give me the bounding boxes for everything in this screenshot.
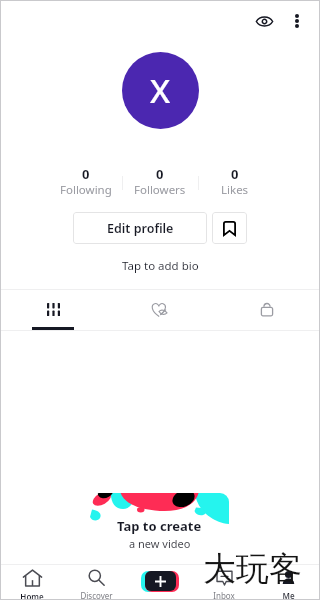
staticText: Home xyxy=(20,591,44,600)
staticText: Likes xyxy=(221,182,249,198)
button[interactable]: Videos xyxy=(0,290,106,330)
button[interactable]: 0 xyxy=(48,165,123,199)
staticText: 0 xyxy=(231,165,239,183)
button[interactable]: 0 xyxy=(123,165,197,199)
button[interactable]: Edit profile xyxy=(73,212,207,244)
staticText: a new video xyxy=(129,536,191,549)
staticText: Discover xyxy=(80,590,113,600)
button[interactable]: Me xyxy=(256,565,320,600)
staticText: Tap to add bio xyxy=(122,258,199,274)
staticText: Followers xyxy=(134,182,186,198)
staticText: Me xyxy=(282,590,295,600)
button[interactable]: Tap to create xyxy=(90,493,229,549)
button[interactable]: Views xyxy=(247,4,281,38)
staticText: 大玩客 xyxy=(203,548,302,590)
staticText: Edit profile xyxy=(107,220,174,237)
button[interactable]: Liked xyxy=(106,290,213,330)
staticText: Following xyxy=(60,182,112,198)
staticText: 0 xyxy=(82,165,90,183)
staticText: Inbox xyxy=(213,590,235,600)
button[interactable]: Private xyxy=(213,290,320,330)
button[interactable]: Create xyxy=(141,570,179,592)
button[interactable]: More options xyxy=(280,4,314,38)
button[interactable]: X xyxy=(122,52,199,129)
staticText: Tap to create xyxy=(117,517,202,535)
staticText: X xyxy=(150,68,171,113)
button[interactable]: 0 xyxy=(197,165,272,199)
button[interactable]: Home xyxy=(0,565,64,600)
staticText: 0 xyxy=(156,165,164,183)
button[interactable]: Tap to add bio xyxy=(116,256,205,276)
button[interactable]: Inbox xyxy=(192,565,256,600)
button[interactable]: Bookmarks xyxy=(212,212,247,244)
button[interactable]: Discover xyxy=(64,565,128,600)
